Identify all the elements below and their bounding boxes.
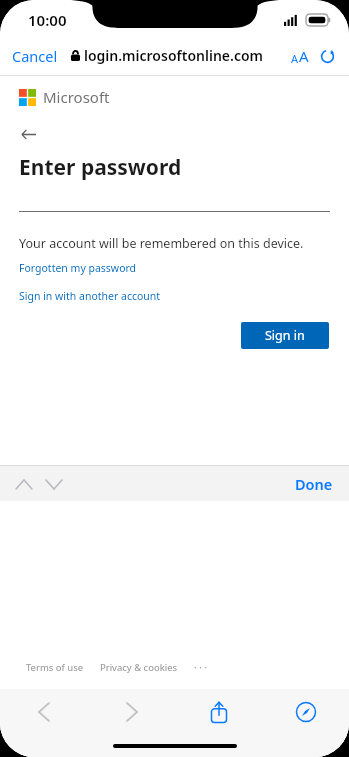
staticText: Terms of use bbox=[26, 661, 84, 674]
button[interactable]: Text size bbox=[286, 40, 314, 72]
button[interactable]: Tabs bbox=[262, 689, 349, 735]
button[interactable]: Back bbox=[15, 121, 41, 147]
staticText: 10:00 bbox=[28, 10, 67, 30]
staticText: · · · bbox=[194, 660, 208, 674]
staticText: Sign in bbox=[265, 327, 305, 344]
button[interactable]: Forgotten my password bbox=[19, 261, 137, 275]
button[interactable]: Next field bbox=[40, 470, 68, 498]
staticText: A bbox=[299, 46, 309, 66]
button[interactable]: Terms of use bbox=[26, 661, 84, 674]
staticText: login.microsoftonline.com bbox=[84, 46, 263, 65]
button[interactable]: Forward bbox=[88, 689, 175, 735]
staticText: Cancel bbox=[12, 46, 58, 66]
staticText: Privacy & cookies bbox=[100, 661, 178, 674]
staticText: Microsoft bbox=[43, 87, 110, 107]
staticText: Your account will be remembered on this … bbox=[19, 235, 304, 252]
button[interactable]: Share bbox=[175, 689, 262, 735]
button[interactable]: Previous field bbox=[10, 470, 38, 498]
button[interactable]: Reload bbox=[314, 43, 349, 70]
button[interactable]: Privacy & cookies bbox=[100, 661, 178, 674]
staticText: A bbox=[291, 51, 299, 66]
button[interactable]: Sign in bbox=[241, 322, 329, 349]
staticText: Enter password bbox=[19, 153, 182, 182]
staticText: Sign in with another account bbox=[19, 289, 161, 303]
button[interactable]: Cancel bbox=[0, 40, 70, 72]
staticText: Done bbox=[295, 474, 333, 494]
button[interactable]: Back bbox=[0, 689, 88, 735]
button[interactable]: Sign in with another account bbox=[19, 289, 161, 303]
staticText: Forgotten my password bbox=[19, 261, 137, 275]
button[interactable]: Done bbox=[279, 468, 349, 500]
button[interactable]: More bbox=[192, 658, 210, 676]
